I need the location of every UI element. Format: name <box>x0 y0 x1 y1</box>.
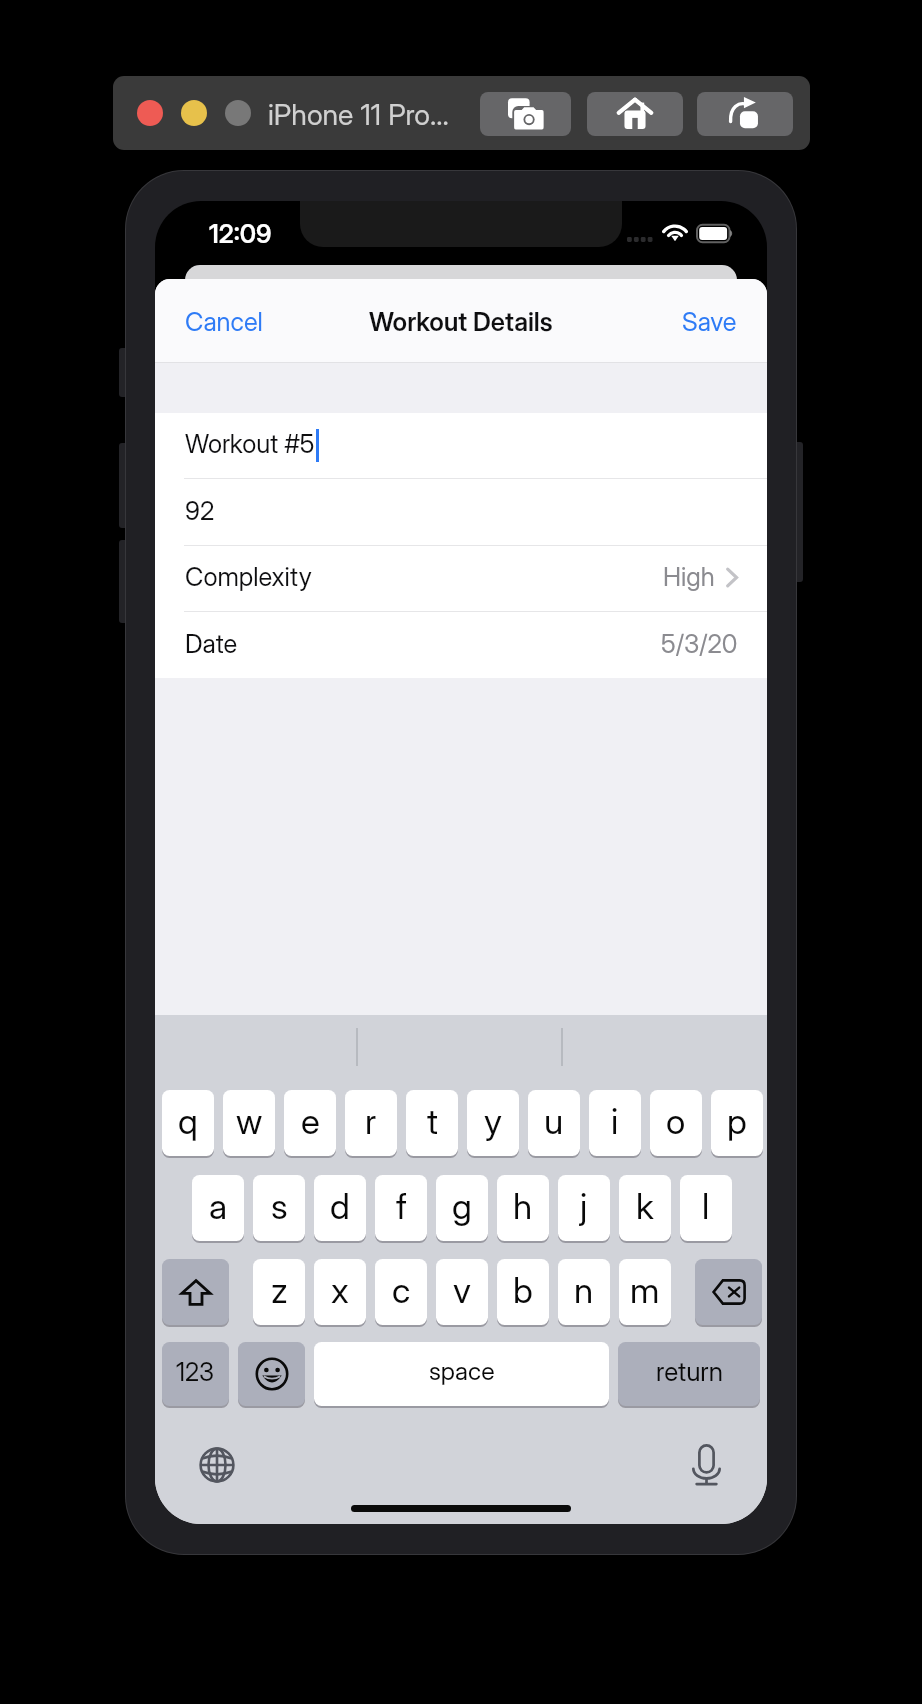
button[interactable]: f <box>375 1175 427 1243</box>
staticText: x <box>331 1269 349 1311</box>
button[interactable]: Dictation <box>678 1437 734 1493</box>
button[interactable]: b <box>497 1259 549 1327</box>
button[interactable]: x <box>314 1259 366 1327</box>
staticText: Date <box>185 628 238 659</box>
button[interactable]: Shift <box>162 1259 229 1327</box>
staticText: Cancel <box>185 306 263 337</box>
staticText: r <box>365 1100 377 1142</box>
button[interactable]: Save <box>668 294 751 349</box>
staticText: Complexity <box>185 561 312 592</box>
staticText: m <box>630 1269 660 1311</box>
button[interactable]: Emoji <box>238 1342 305 1408</box>
staticText: High <box>663 561 715 592</box>
staticText: t <box>427 1100 438 1142</box>
staticText: l <box>702 1185 710 1227</box>
button[interactable]: Date <box>155 612 767 678</box>
button[interactable]: j <box>558 1175 610 1243</box>
staticText: s <box>271 1185 288 1227</box>
button[interactable]: t <box>406 1090 458 1158</box>
staticText: p <box>727 1100 747 1142</box>
button[interactable]: Screenshot <box>480 92 571 136</box>
staticText: o <box>666 1100 686 1142</box>
staticText: j <box>580 1185 588 1227</box>
staticText: k <box>636 1185 654 1227</box>
staticText: 92 <box>185 495 215 526</box>
button[interactable]: k <box>619 1175 671 1243</box>
button[interactable]: m <box>619 1259 671 1327</box>
staticText: a <box>209 1185 228 1227</box>
button[interactable]: Workout #5 <box>155 413 767 478</box>
button[interactable]: 92 <box>155 479 767 545</box>
staticText: q <box>178 1100 198 1142</box>
button[interactable]: a <box>192 1175 244 1243</box>
button[interactable]: q <box>162 1090 214 1158</box>
button[interactable]: n <box>558 1259 610 1327</box>
button[interactable]: e <box>284 1090 336 1158</box>
staticText: h <box>513 1185 533 1227</box>
staticText: return <box>656 1356 723 1387</box>
button[interactable]: c <box>375 1259 427 1327</box>
button[interactable]: Backspace <box>695 1259 762 1327</box>
staticText: f <box>396 1185 407 1227</box>
staticText: b <box>513 1269 533 1311</box>
staticText: z <box>271 1269 288 1311</box>
button[interactable]: Cancel <box>171 294 277 349</box>
button[interactable]: Home <box>587 92 683 136</box>
button[interactable]: Change keyboard <box>189 1437 245 1493</box>
staticText: iPhone 11 Pro… <box>268 97 449 131</box>
button[interactable]: Zoom <box>225 100 251 126</box>
staticText: Workout Details <box>369 306 553 337</box>
staticText: i <box>611 1100 619 1142</box>
staticText: n <box>574 1269 594 1311</box>
staticText: v <box>453 1269 471 1311</box>
staticText: w <box>236 1100 263 1142</box>
button[interactable]: i <box>589 1090 641 1158</box>
staticText: u <box>544 1100 564 1142</box>
button[interactable]: s <box>253 1175 305 1243</box>
button[interactable]: h <box>497 1175 549 1243</box>
staticText: c <box>392 1269 411 1311</box>
button[interactable]: l <box>680 1175 732 1243</box>
staticText: 123 <box>176 1357 215 1387</box>
staticText: y <box>484 1100 502 1142</box>
staticText: d <box>330 1185 350 1227</box>
button[interactable]: d <box>314 1175 366 1243</box>
button[interactable]: v <box>436 1259 488 1327</box>
button[interactable]: w <box>223 1090 275 1158</box>
button[interactable]: r <box>345 1090 397 1158</box>
button[interactable]: Minimize <box>181 100 207 126</box>
button[interactable]: o <box>650 1090 702 1158</box>
button[interactable]: g <box>436 1175 488 1243</box>
staticText: e <box>301 1100 320 1142</box>
button[interactable]: y <box>467 1090 519 1158</box>
button[interactable]: return <box>618 1342 760 1408</box>
button[interactable]: Numbers <box>162 1342 229 1408</box>
button[interactable]: Close <box>137 100 163 126</box>
staticText: Save <box>682 306 737 337</box>
button[interactable]: Complexity <box>155 546 767 611</box>
staticText: space <box>429 1356 495 1386</box>
button[interactable]: p <box>711 1090 763 1158</box>
staticText: 5/3/20 <box>661 628 738 659</box>
button[interactable]: Share <box>697 92 793 136</box>
staticText: Workout #5 <box>185 428 315 459</box>
button[interactable]: space <box>314 1342 609 1408</box>
button[interactable]: z <box>253 1259 305 1327</box>
button[interactable]: u <box>528 1090 580 1158</box>
staticText: 12:09 <box>209 218 272 249</box>
staticText: g <box>452 1185 472 1227</box>
